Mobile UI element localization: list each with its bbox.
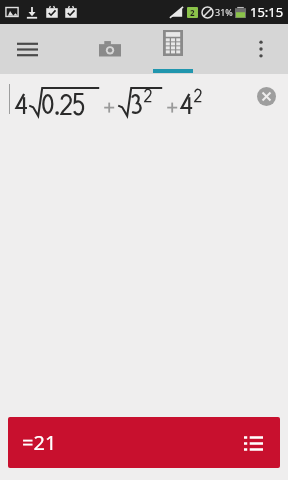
button[interactable]: =21 [8, 417, 280, 468]
staticText: 15:15 [250, 3, 284, 21]
staticText: =21 [22, 429, 57, 456]
button[interactable]: More options [240, 28, 282, 70]
button[interactable]: Menu [6, 28, 48, 70]
button[interactable]: Calculator [152, 24, 194, 74]
staticText: 31% [215, 6, 233, 18]
button[interactable]: Clear [250, 80, 282, 112]
button[interactable]: Camera [89, 28, 131, 70]
staticText: 2 [190, 7, 195, 18]
button[interactable]: History [236, 426, 270, 460]
